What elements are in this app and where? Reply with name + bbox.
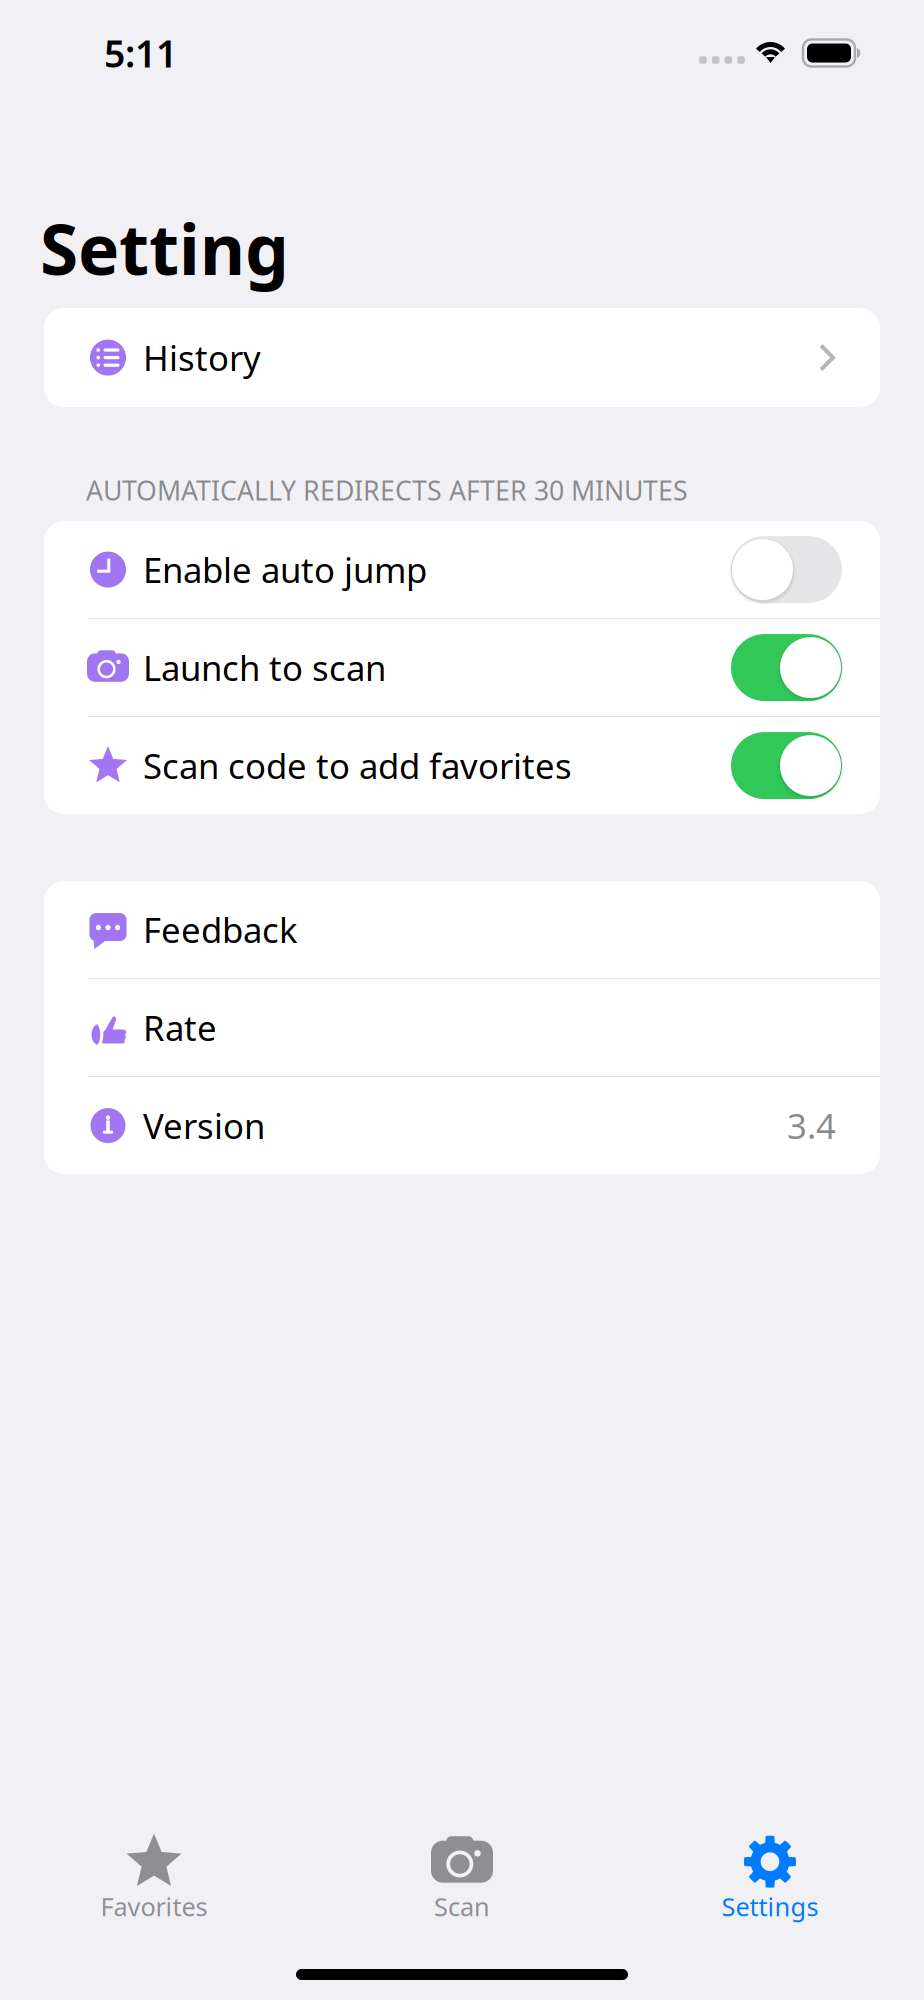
- staticText: Rate: [143, 1005, 217, 1051]
- button[interactable]: Settings: [616, 1834, 924, 1924]
- button[interactable]: History: [44, 308, 880, 407]
- staticText: Scan code to add favorites: [143, 743, 572, 789]
- button[interactable]: Feedback: [44, 881, 880, 978]
- button[interactable]: Launch to scan: [44, 619, 880, 716]
- staticText: History: [143, 335, 261, 381]
- button[interactable]: Favorites: [0, 1834, 308, 1924]
- staticText: Version: [143, 1103, 265, 1149]
- button[interactable]: Scan: [308, 1834, 616, 1924]
- staticText: 3.4: [787, 1103, 836, 1149]
- staticText: 5:11: [104, 28, 177, 78]
- button[interactable]: Scan code to add favorites: [44, 717, 880, 814]
- staticText: Launch to scan: [143, 645, 386, 691]
- button[interactable]: Enable auto jump: [44, 521, 880, 618]
- staticText: Scan: [434, 1890, 490, 1923]
- staticText: Settings: [721, 1890, 818, 1923]
- button[interactable]: Rate: [44, 979, 880, 1076]
- staticText: Favorites: [100, 1890, 207, 1923]
- staticText: Setting: [40, 202, 289, 294]
- staticText: Enable auto jump: [143, 547, 427, 593]
- staticText: Feedback: [143, 907, 298, 953]
- staticText: AUTOMATICALLY REDIRECTS AFTER 30 MINUTES: [86, 472, 688, 508]
